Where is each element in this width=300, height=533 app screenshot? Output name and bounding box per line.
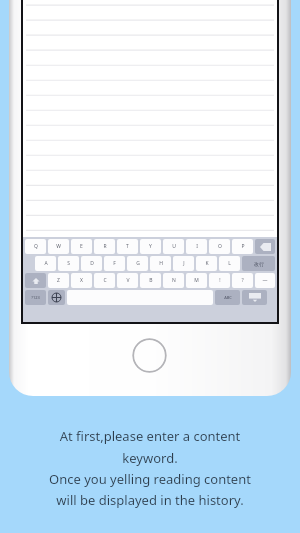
button[interactable]: Y xyxy=(140,239,161,254)
staticText: Y xyxy=(149,243,152,250)
button[interactable]: R xyxy=(94,239,115,254)
staticText: E xyxy=(80,243,83,250)
staticText: O xyxy=(218,243,222,250)
button[interactable]: Shift xyxy=(25,273,46,288)
button[interactable]: U xyxy=(163,239,184,254)
staticText: V xyxy=(126,277,130,284)
staticText: G xyxy=(136,260,140,267)
button[interactable]: B xyxy=(140,273,161,288)
staticText: K xyxy=(205,260,209,267)
button[interactable]: Backspace xyxy=(255,239,275,254)
button[interactable]: M xyxy=(186,273,207,288)
button[interactable]: O xyxy=(209,239,230,254)
button[interactable]: D xyxy=(81,256,102,271)
staticText: W xyxy=(56,243,61,250)
button[interactable]: T xyxy=(117,239,138,254)
button[interactable]: P xyxy=(232,239,253,254)
button[interactable]: N xyxy=(163,273,184,288)
button[interactable]: F xyxy=(104,256,125,271)
staticText: T xyxy=(126,243,129,250)
button[interactable]: Z xyxy=(48,273,69,288)
button[interactable]: S xyxy=(58,256,79,271)
staticText: M xyxy=(194,277,199,284)
staticText: X xyxy=(80,277,83,284)
button[interactable]: Home xyxy=(132,338,167,373)
staticText: I xyxy=(196,243,198,250)
staticText: J xyxy=(183,260,185,267)
staticText: Z xyxy=(57,277,60,284)
button[interactable]: Q xyxy=(25,239,46,254)
button[interactable]: H xyxy=(150,256,171,271)
button[interactable]: X xyxy=(71,273,92,288)
staticText: — xyxy=(262,277,268,284)
staticText: ! xyxy=(219,277,221,284)
button[interactable]: ABC xyxy=(215,290,240,305)
button[interactable]: A xyxy=(35,256,56,271)
staticText: H xyxy=(159,260,163,267)
staticText: ABC xyxy=(224,295,232,300)
staticText: R xyxy=(103,243,107,250)
staticText: 改行 xyxy=(254,261,264,267)
staticText: S xyxy=(67,260,70,267)
button[interactable]: ?123 xyxy=(25,290,46,305)
staticText: N xyxy=(172,277,176,284)
button[interactable]: C xyxy=(94,273,115,288)
button[interactable]: K xyxy=(196,256,217,271)
button[interactable]: Switch language xyxy=(48,290,65,305)
staticText: U xyxy=(172,243,176,250)
button[interactable]: J xyxy=(173,256,194,271)
staticText: ? xyxy=(241,277,244,284)
staticText: A xyxy=(44,260,48,267)
staticText: L xyxy=(228,260,231,267)
staticText: At first,please enter a content keyword.… xyxy=(49,427,251,509)
staticText: P xyxy=(241,243,245,250)
button[interactable]: Hide keyboard xyxy=(242,290,267,305)
staticText: D xyxy=(90,260,94,267)
button[interactable]: L xyxy=(219,256,240,271)
button[interactable]: W xyxy=(48,239,69,254)
staticText: C xyxy=(103,277,107,284)
button[interactable]: — xyxy=(255,273,275,288)
staticText: ?123 xyxy=(31,295,40,300)
button[interactable]: 改行 xyxy=(242,256,275,271)
button[interactable]: ! xyxy=(209,273,230,288)
button[interactable]: G xyxy=(127,256,148,271)
staticText: B xyxy=(149,277,153,284)
button[interactable]: E xyxy=(71,239,92,254)
staticText: Q xyxy=(34,243,38,250)
button[interactable]: ? xyxy=(232,273,253,288)
button[interactable]: V xyxy=(117,273,138,288)
staticText: F xyxy=(113,260,116,267)
button[interactable]: I xyxy=(186,239,207,254)
